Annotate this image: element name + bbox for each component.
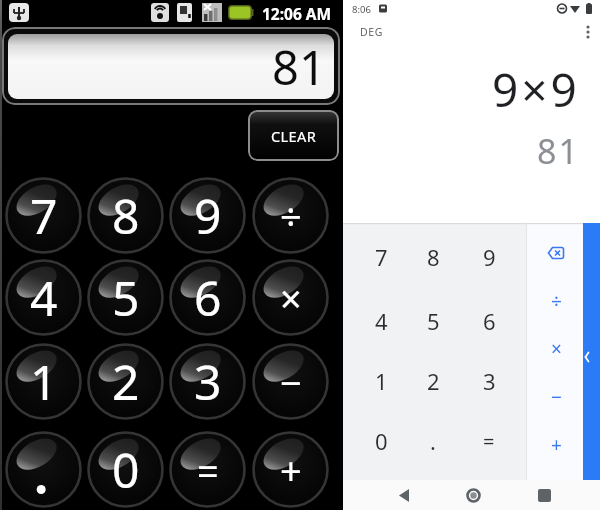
- button[interactable]: [535, 235, 577, 271]
- staticText: 8: [112, 183, 140, 248]
- button[interactable]: 6: [463, 293, 515, 349]
- button[interactable]: 9: [169, 177, 246, 254]
- button[interactable]: 3: [463, 353, 515, 409]
- staticText: CLEAR: [271, 126, 317, 146]
- staticText: 2: [112, 349, 140, 414]
- button[interactable]: +: [535, 425, 577, 465]
- button[interactable]: 4: [355, 293, 407, 349]
- button[interactable]: [393, 484, 415, 506]
- button[interactable]: 8: [87, 177, 164, 254]
- button[interactable]: 5: [87, 259, 164, 336]
- staticText: ×: [551, 336, 562, 362]
- button[interactable]: [579, 22, 597, 42]
- staticText: 8:06: [352, 3, 371, 16]
- staticText: 3: [483, 366, 496, 396]
- staticText: 12:06 AM: [262, 3, 332, 24]
- staticText: +: [551, 432, 562, 458]
- staticText: 81: [537, 128, 580, 174]
- staticText: 7: [375, 242, 388, 272]
- staticText: −: [551, 384, 562, 410]
- button[interactable]: =: [169, 431, 246, 508]
- staticText: −: [280, 356, 302, 408]
- staticText: 9: [194, 183, 222, 248]
- staticText: 0: [112, 437, 140, 502]
- button[interactable]: 3: [169, 343, 246, 420]
- button[interactable]: −: [535, 377, 577, 417]
- button[interactable]: 7: [355, 229, 407, 285]
- staticText: 7: [30, 183, 58, 248]
- button[interactable]: [533, 484, 555, 506]
- button[interactable]: −: [252, 343, 329, 420]
- staticText: =: [197, 444, 219, 496]
- staticText: DEG: [360, 25, 383, 39]
- button[interactable]: =: [463, 413, 515, 469]
- button[interactable]: [5, 431, 82, 508]
- staticText: +: [280, 444, 302, 496]
- staticText: ×: [280, 272, 302, 324]
- button[interactable]: ÷: [252, 177, 329, 254]
- staticText: ÷: [280, 190, 302, 242]
- button[interactable]: 0: [87, 431, 164, 508]
- button[interactable]: [462, 484, 484, 506]
- staticText: .: [430, 426, 436, 456]
- staticText: 4: [30, 265, 58, 330]
- staticText: 8: [427, 242, 440, 272]
- button[interactable]: 1: [5, 343, 82, 420]
- staticText: 1: [375, 366, 388, 396]
- staticText: 9: [483, 242, 496, 272]
- staticText: 2: [427, 366, 440, 396]
- button[interactable]: 9: [463, 229, 515, 285]
- staticText: 9×9: [492, 58, 580, 121]
- staticText: 6: [194, 265, 222, 330]
- button[interactable]: 1: [355, 353, 407, 409]
- staticText: 5: [427, 306, 440, 336]
- staticText: 5: [112, 265, 140, 330]
- button[interactable]: CLEAR: [248, 110, 339, 161]
- button[interactable]: 7: [5, 177, 82, 254]
- button[interactable]: 0: [355, 413, 407, 469]
- button[interactable]: [583, 223, 600, 480]
- staticText: 3: [194, 349, 222, 414]
- button[interactable]: +: [252, 431, 329, 508]
- button[interactable]: 8: [407, 229, 459, 285]
- button[interactable]: 2: [407, 353, 459, 409]
- button[interactable]: 6: [169, 259, 246, 336]
- button[interactable]: .: [407, 413, 459, 469]
- button[interactable]: 2: [87, 343, 164, 420]
- staticText: 6: [483, 306, 496, 336]
- staticText: 81: [272, 35, 326, 99]
- button[interactable]: DEG: [351, 22, 391, 42]
- staticText: 1: [30, 349, 58, 414]
- button[interactable]: 5: [407, 293, 459, 349]
- staticText: 0: [375, 426, 388, 456]
- button[interactable]: ×: [535, 329, 577, 369]
- staticText: =: [483, 428, 495, 455]
- button[interactable]: 4: [5, 259, 82, 336]
- staticText: ÷: [551, 288, 562, 314]
- button[interactable]: ÷: [535, 281, 577, 321]
- staticText: 4: [375, 306, 388, 336]
- button[interactable]: ×: [252, 259, 329, 336]
